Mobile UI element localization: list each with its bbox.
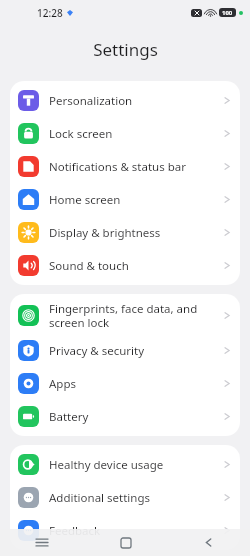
staticText: Sound & touch <box>49 258 218 274</box>
button[interactable]: Sound & touch <box>10 249 240 282</box>
button[interactable]: Home screen <box>10 183 240 216</box>
button[interactable]: Additional settings <box>10 481 240 514</box>
button[interactable]: Notifications & status bar <box>10 150 240 183</box>
staticText: Privacy & security <box>49 343 218 359</box>
staticText: Lock screen <box>49 126 218 142</box>
staticText: Battery <box>49 409 218 425</box>
button[interactable]: Lock screen <box>10 117 240 150</box>
button[interactable]: Privacy & security <box>10 334 240 367</box>
staticText: Display & brightness <box>49 225 218 241</box>
button[interactable]: Home <box>84 529 167 556</box>
staticText: 12:28 <box>37 6 63 20</box>
staticText: Healthy device usage <box>49 457 218 473</box>
button[interactable]: Feedback <box>10 514 240 547</box>
staticText: Home screen <box>49 192 218 208</box>
staticText: Additional settings <box>49 490 218 506</box>
button[interactable]: Personalization <box>10 84 240 117</box>
staticText: Fingerprints, face data, and screen lock <box>49 301 218 330</box>
button[interactable]: Recent apps <box>0 529 84 556</box>
staticText: 100 <box>222 9 233 17</box>
staticText: Apps <box>49 376 218 392</box>
staticText: Personalization <box>49 93 218 109</box>
staticText: Feedback <box>49 523 218 539</box>
button[interactable]: Display & brightness <box>10 216 240 249</box>
button[interactable]: Apps <box>10 367 240 400</box>
button[interactable]: Healthy device usage <box>10 448 240 481</box>
button[interactable]: Back <box>167 529 250 556</box>
staticText: Settings <box>93 38 158 61</box>
button[interactable]: Battery <box>10 400 240 433</box>
staticText: Notifications & status bar <box>49 159 218 175</box>
button[interactable]: Fingerprints, face data, and screen lock <box>10 297 240 334</box>
